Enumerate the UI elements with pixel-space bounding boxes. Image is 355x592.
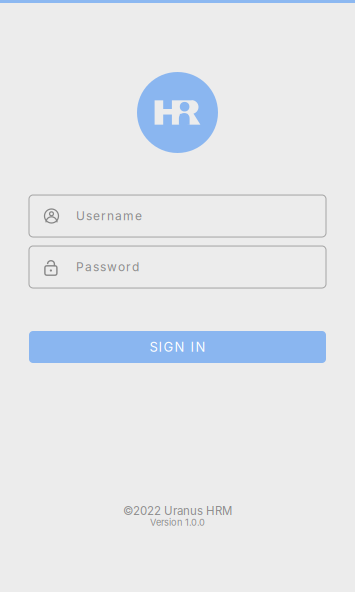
button[interactable]: S I G N I N bbox=[29, 331, 326, 363]
staticText: P a s s w o r d bbox=[76, 260, 139, 274]
staticText: ©2022 Uranus HRM bbox=[123, 504, 232, 518]
staticText: U s e r n a m e bbox=[76, 209, 142, 223]
staticText: Version 1.0.0 bbox=[150, 517, 205, 528]
staticText: S I G N I N bbox=[149, 339, 205, 355]
button[interactable]: P a s s w o r d bbox=[29, 246, 326, 288]
button[interactable]: U s e r n a m e bbox=[29, 195, 326, 237]
